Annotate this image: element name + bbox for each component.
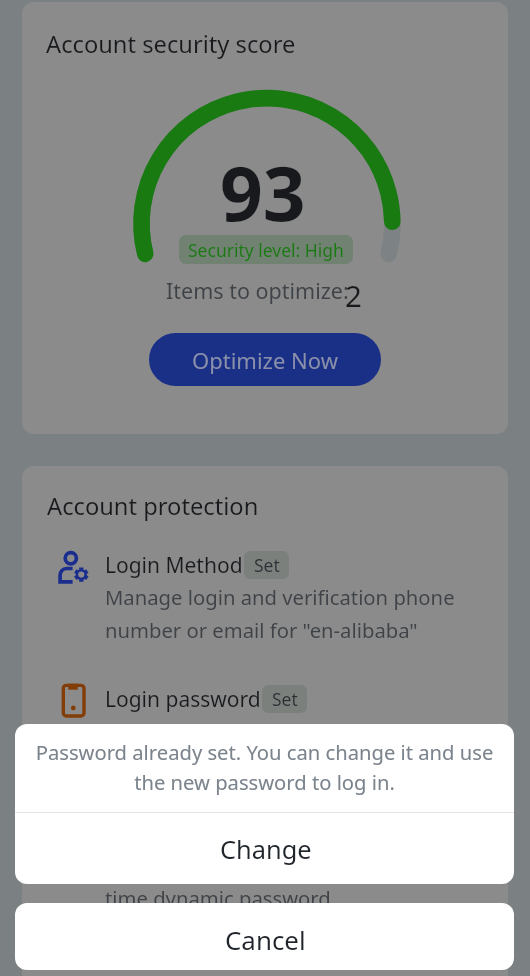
- staticText: Optimize Now: [192, 345, 338, 375]
- button[interactable]: Optimize Now: [149, 333, 381, 386]
- button[interactable]: Login method: [22, 546, 508, 674]
- other: Login password: [57, 682, 89, 714]
- button[interactable]: Cancel: [15, 903, 514, 970]
- other: Login method: [58, 551, 90, 583]
- staticText: Items to optimize:: [166, 276, 349, 305]
- staticText: Set: [254, 553, 280, 577]
- staticText: Password already set. You can change it …: [15, 738, 514, 795]
- staticText: 93: [220, 141, 306, 243]
- staticText: Dynamic password: [105, 819, 292, 848]
- staticText: 2: [345, 275, 362, 315]
- staticText: Get a dynamic password by SMS. Use a one…: [105, 851, 508, 912]
- button[interactable]: Login password: [22, 814, 508, 942]
- staticText: Cancel: [225, 922, 306, 957]
- staticText: Change: [220, 832, 312, 867]
- staticText: Login password: [105, 685, 261, 714]
- staticText: Login Method: [105, 551, 243, 580]
- staticText: Security level: High: [188, 238, 344, 262]
- staticText: Manage login and verification phone numb…: [105, 583, 455, 644]
- staticText: Account security score: [46, 28, 296, 60]
- button[interactable]: Change: [15, 813, 514, 884]
- button[interactable]: Login password: [22, 680, 508, 808]
- staticText: Set: [272, 687, 298, 711]
- staticText: Password already set. You can change it …: [105, 717, 508, 778]
- staticText: Account protection: [47, 490, 259, 522]
